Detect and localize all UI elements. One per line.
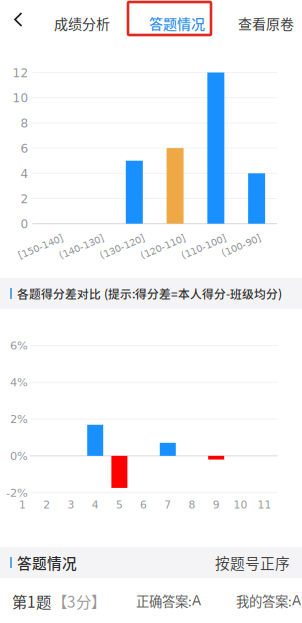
staticText: (100-90]: [219, 232, 261, 243]
staticText: (120-110]: [137, 232, 185, 243]
staticText: 8: [20, 116, 28, 130]
button[interactable]: 答题情况: [149, 13, 205, 33]
staticText: 2: [20, 192, 28, 206]
staticText: 12: [12, 66, 28, 80]
staticText: A: [192, 593, 201, 608]
staticText: 10: [12, 91, 28, 105]
staticText: (110-100]: [178, 232, 226, 243]
staticText: 【3分】: [52, 590, 106, 612]
staticText: 成绩分析: [54, 13, 110, 33]
staticText: 4%: [10, 376, 28, 389]
staticText: 答题情况: [149, 13, 205, 33]
staticText: 1: [19, 499, 26, 511]
staticText: 4: [20, 167, 28, 181]
staticText: 2: [43, 499, 50, 511]
staticText: 9: [213, 499, 220, 511]
staticText: 10: [233, 499, 247, 511]
button[interactable]: 查看原卷: [238, 13, 294, 33]
staticText: 11: [258, 499, 272, 511]
button[interactable]: 成绩分析: [54, 13, 110, 33]
staticText: 4: [92, 499, 99, 511]
staticText: 3: [67, 499, 74, 511]
staticText: 我的答案:: [236, 591, 292, 610]
staticText: 正确答案:: [136, 591, 192, 610]
staticText: 8: [188, 499, 195, 511]
staticText: -2%: [6, 486, 28, 499]
staticText: 0%: [10, 449, 28, 463]
staticText: [150-140]: [15, 232, 63, 243]
staticText: 查看原卷: [238, 13, 294, 33]
staticText: 答题情况: [17, 552, 77, 573]
staticText: 6%: [10, 339, 28, 352]
button[interactable]: Back: [14, 12, 23, 27]
staticText: A: [292, 593, 301, 608]
staticText: 6: [20, 142, 28, 156]
staticText: (140-130]: [55, 232, 103, 243]
staticText: 6: [140, 499, 147, 511]
button[interactable]: 按题号正序: [215, 543, 302, 582]
staticText: 2%: [10, 412, 28, 426]
staticText: 按题号正序: [215, 552, 290, 573]
staticText: (130-120]: [96, 232, 144, 243]
staticText: 0: [20, 217, 28, 231]
staticText: 5: [116, 499, 123, 511]
staticText: 7: [164, 499, 171, 511]
staticText: 第1题: [12, 590, 51, 612]
staticText: 各题得分差对比 (提示:得分差=本人得分-班级均分): [17, 285, 282, 302]
